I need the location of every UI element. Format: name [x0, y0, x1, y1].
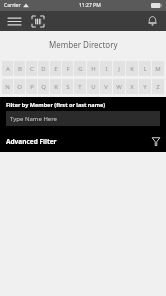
staticText: Member Directory: [49, 39, 118, 50]
staticText: T: [78, 83, 82, 91]
button[interactable]: U: [87, 79, 99, 94]
staticText: S: [66, 83, 70, 91]
staticText: Type Name Here: [10, 115, 57, 123]
staticText: N: [5, 83, 10, 91]
button[interactable]: Advanced Filter: [6, 134, 160, 148]
button[interactable]: F: [62, 61, 73, 76]
staticText: U: [91, 83, 96, 91]
button[interactable]: A: [2, 61, 13, 76]
button[interactable]: W: [113, 79, 125, 94]
button[interactable]: K: [126, 61, 138, 76]
staticText: D: [41, 65, 46, 73]
staticText: F: [66, 65, 70, 73]
button[interactable]: X: [126, 79, 138, 94]
button[interactable]: V: [100, 79, 112, 94]
button[interactable]: Q: [38, 79, 49, 94]
button[interactable]: N: [2, 79, 13, 94]
staticText: P: [30, 83, 34, 91]
button[interactable]: H: [87, 61, 99, 76]
button[interactable]: Z: [152, 79, 164, 94]
staticText: B: [18, 65, 22, 73]
button[interactable]: J: [113, 61, 125, 76]
button[interactable]: L: [139, 61, 151, 76]
staticText: R: [54, 83, 58, 91]
button[interactable]: Menu: [6, 13, 22, 29]
staticText: W: [116, 83, 122, 91]
staticText: Carrier: [4, 2, 21, 9]
staticText: K: [130, 65, 134, 73]
staticText: J: [118, 65, 120, 73]
staticText: M: [155, 65, 161, 73]
staticText: H: [91, 65, 96, 73]
staticText: Filter by Member (first or last name): [6, 101, 106, 108]
staticText: X: [130, 83, 134, 91]
button[interactable]: R: [50, 79, 61, 94]
button[interactable]: D: [38, 61, 49, 76]
staticText: O: [17, 83, 22, 91]
button[interactable]: Scan barcode: [30, 13, 46, 29]
button[interactable]: Notifications: [144, 13, 160, 29]
staticText: C: [30, 65, 34, 73]
button[interactable]: Y: [139, 79, 151, 94]
button[interactable]: E: [50, 61, 61, 76]
staticText: Z: [156, 83, 160, 91]
staticText: L: [143, 65, 147, 73]
staticText: Advanced Filter: [6, 137, 57, 146]
button[interactable]: B: [14, 61, 25, 76]
staticText: Y: [143, 83, 147, 91]
button[interactable]: S: [62, 79, 73, 94]
button[interactable]: T: [74, 79, 86, 94]
staticText: Q: [41, 83, 46, 91]
staticText: I: [105, 65, 108, 73]
button[interactable]: Type Name Here: [6, 111, 160, 126]
staticText: V: [104, 83, 108, 91]
button[interactable]: I: [100, 61, 112, 76]
button[interactable]: P: [26, 79, 37, 94]
button[interactable]: M: [152, 61, 164, 76]
staticText: G: [78, 65, 83, 73]
button[interactable]: O: [14, 79, 25, 94]
button[interactable]: C: [26, 61, 37, 76]
staticText: 11:27 PM: [79, 2, 101, 9]
button[interactable]: G: [74, 61, 86, 76]
staticText: E: [54, 65, 58, 73]
staticText: A: [6, 65, 10, 73]
